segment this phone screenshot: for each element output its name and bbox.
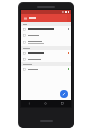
button[interactable]: Recent apps	[54, 100, 71, 107]
button[interactable]: Home	[37, 100, 54, 107]
button[interactable]	[21, 32, 71, 38]
button[interactable]	[21, 66, 71, 72]
button[interactable]: Compose	[60, 90, 68, 98]
button[interactable]	[21, 56, 71, 62]
button[interactable]	[21, 50, 71, 56]
button[interactable]: Back	[21, 100, 37, 107]
button[interactable]	[21, 26, 71, 32]
button[interactable]	[21, 38, 71, 46]
button[interactable]: Navigation menu	[23, 16, 28, 21]
